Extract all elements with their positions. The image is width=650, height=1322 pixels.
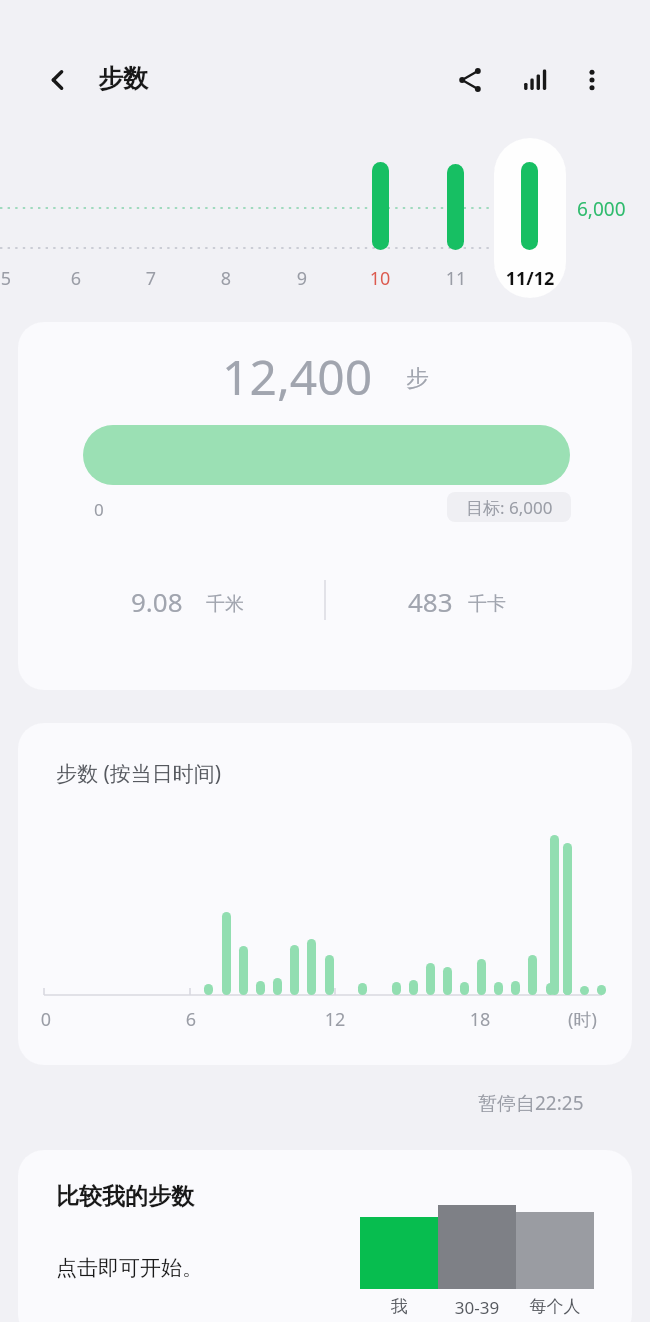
staticText: 9.08 [131,584,183,619]
staticText: 12 [322,1007,348,1032]
staticText: 483 [408,584,453,619]
staticText: 11 [439,266,473,291]
staticText: 6 [183,1007,199,1032]
staticText: 千卡 [468,592,506,616]
staticText: 12,400 [222,344,373,409]
staticText: 每个人 [516,1296,594,1317]
staticText: 目标: 6,000 [466,496,553,519]
button[interactable]: Statistics [508,54,560,106]
staticText: 比较我的步数 [56,1182,194,1211]
button[interactable]: Back [34,56,82,104]
staticText: 步数 [98,63,148,94]
staticText: 9 [292,266,312,291]
staticText: 30-39 [438,1296,516,1319]
staticText: 0 [38,1007,54,1032]
staticText: (时) [568,1007,597,1032]
staticText: 0 [94,498,104,521]
staticText: 10 [363,266,397,291]
staticText: 步 [406,364,429,393]
staticText: 我 [360,1296,438,1317]
staticText: 8 [216,266,236,291]
button[interactable]: 步数 (按当日时间) [18,723,632,1065]
staticText: 6,000 [577,196,626,222]
staticText: 步数 (按当日时间) [56,759,222,788]
button[interactable]: Share [444,54,496,106]
staticText: 7 [141,266,161,291]
staticText: 11/12 [495,266,565,291]
button[interactable]: 比较我的步数 [18,1150,632,1322]
staticText: 18 [467,1007,493,1032]
button[interactable]: Selected day 11/12 [494,138,566,298]
button[interactable]: 12,400 [18,322,632,690]
staticText: 5 [0,266,16,291]
staticText: 暂停自22:25 [478,1090,584,1116]
staticText: 6 [66,266,86,291]
staticText: 点击即可开始。 [56,1255,203,1281]
button[interactable]: More options [566,54,618,106]
staticText: 千米 [206,592,244,616]
